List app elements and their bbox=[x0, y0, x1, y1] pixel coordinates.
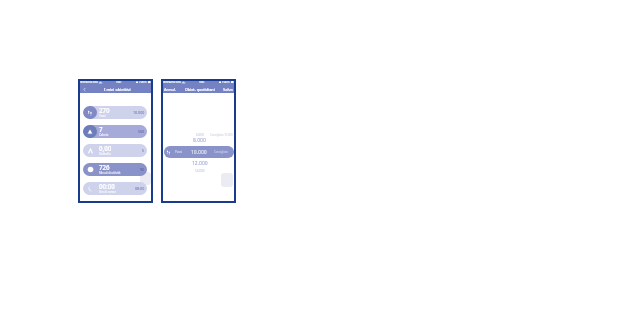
staticText: 100% bbox=[139, 80, 147, 84]
button[interactable]: 270 bbox=[83, 106, 147, 119]
staticText: 0,00 bbox=[99, 144, 112, 152]
staticText: Minuti di attività bbox=[99, 171, 121, 175]
staticText: Consigliato 10.000 bbox=[210, 133, 233, 137]
staticText: 8.000 bbox=[193, 137, 206, 144]
staticText: 00:00 bbox=[99, 182, 115, 190]
button[interactable]: Passi bbox=[164, 146, 234, 158]
staticText: 7 bbox=[99, 125, 103, 133]
button[interactable]: 7 bbox=[83, 125, 147, 138]
staticText: 08:00 bbox=[135, 186, 145, 191]
staticText: Nessuna SIM bbox=[80, 80, 98, 84]
button[interactable]: 726 bbox=[83, 163, 147, 176]
staticText: 9:41 bbox=[116, 80, 122, 84]
staticText: Passi bbox=[175, 150, 183, 154]
staticText: 90 bbox=[140, 167, 145, 172]
staticText: 270 bbox=[99, 106, 110, 114]
staticText: I miei obiettivi bbox=[104, 87, 131, 92]
staticText: Passi bbox=[99, 114, 106, 118]
staticText: 14.000 bbox=[195, 169, 205, 173]
staticText: 500 bbox=[138, 129, 145, 134]
staticText: 10.000 bbox=[191, 149, 207, 156]
button[interactable]: Annul. bbox=[164, 87, 177, 92]
button[interactable]: Back bbox=[80, 85, 88, 93]
staticText: 100% bbox=[222, 80, 230, 84]
button[interactable]: 00:00 bbox=[83, 182, 147, 195]
button[interactable]: Salva bbox=[223, 87, 233, 92]
staticText: Dislivello bbox=[99, 152, 111, 156]
button[interactable]: 0,00 bbox=[83, 144, 147, 157]
staticText: 12.000 bbox=[192, 160, 208, 167]
staticText: 9:41 bbox=[199, 80, 205, 84]
staticText: Nessuna SIM bbox=[163, 80, 181, 84]
staticText: 726 bbox=[99, 163, 110, 171]
staticText: Calorie bbox=[99, 133, 109, 137]
staticText: 5 bbox=[142, 148, 145, 153]
staticText: Consigliato bbox=[214, 150, 229, 154]
staticText: 6.000 bbox=[196, 133, 204, 137]
staticText: Ore di sonno bbox=[99, 190, 116, 194]
staticText: Obiet. quotidiani bbox=[185, 87, 215, 92]
staticText: 10.000 bbox=[133, 110, 145, 115]
